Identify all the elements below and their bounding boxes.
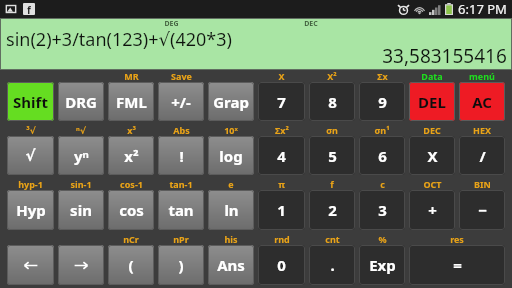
button[interactable]: sin bbox=[58, 190, 104, 230]
button[interactable]: +/- bbox=[158, 82, 204, 121]
staticText: ³√ bbox=[26, 124, 36, 136]
staticText: f bbox=[330, 178, 334, 190]
staticText: . bbox=[330, 255, 335, 275]
button[interactable]: ( bbox=[108, 245, 154, 285]
staticText: ( bbox=[128, 255, 134, 275]
staticText: σn bbox=[326, 124, 338, 136]
staticText: Hyp bbox=[16, 200, 46, 220]
staticText: Σx bbox=[377, 70, 388, 82]
button[interactable]: + bbox=[409, 190, 455, 230]
staticText: tan bbox=[168, 200, 194, 220]
staticText: c bbox=[380, 178, 385, 190]
button[interactable]: x² bbox=[108, 136, 154, 175]
button[interactable]: √ bbox=[7, 136, 54, 175]
button[interactable]: 3 bbox=[359, 190, 405, 230]
staticText: Grap bbox=[213, 92, 249, 112]
staticText: menú bbox=[469, 70, 495, 82]
staticText: nPr bbox=[173, 233, 189, 245]
staticText: x² bbox=[124, 146, 139, 166]
staticText: cnt bbox=[325, 233, 340, 245]
staticText: DEL bbox=[418, 92, 446, 112]
button[interactable]: FML bbox=[108, 82, 154, 121]
staticText: BIN bbox=[474, 178, 491, 190]
staticText: 1 bbox=[277, 200, 286, 220]
staticText: + bbox=[428, 200, 437, 220]
button[interactable]: / bbox=[459, 136, 505, 175]
staticText: Save bbox=[171, 70, 192, 82]
staticText: tan-1 bbox=[169, 178, 193, 190]
staticText: e bbox=[228, 178, 234, 190]
staticText: DEC bbox=[423, 124, 441, 136]
button[interactable]: tan bbox=[158, 190, 204, 230]
button[interactable]: 5 bbox=[309, 136, 355, 175]
button[interactable]: 6 bbox=[359, 136, 405, 175]
staticText: π bbox=[278, 178, 285, 190]
staticText: log bbox=[219, 146, 243, 166]
button[interactable]: Ans bbox=[208, 245, 254, 285]
staticText: DRG bbox=[65, 92, 97, 112]
staticText: 6 bbox=[378, 146, 387, 166]
button[interactable]: Exp bbox=[359, 245, 405, 285]
staticText: rnd bbox=[274, 233, 290, 245]
button[interactable]: X bbox=[409, 136, 455, 175]
staticText: 8 bbox=[328, 92, 337, 112]
button[interactable]: 7 bbox=[258, 82, 305, 121]
staticText: − bbox=[478, 200, 487, 220]
staticText: f bbox=[27, 3, 31, 15]
staticText: Ans bbox=[217, 255, 245, 275]
button[interactable]: 1 bbox=[258, 190, 305, 230]
staticText: hyp-1 bbox=[18, 178, 43, 190]
staticText: DEG bbox=[164, 19, 179, 29]
staticText: Data bbox=[421, 70, 443, 82]
staticText: sin(2)+3/tan(123)+√(420*3) bbox=[6, 27, 232, 52]
staticText: 5 bbox=[328, 146, 337, 166]
button[interactable]: Hyp bbox=[7, 190, 54, 230]
staticText: OCT bbox=[423, 178, 442, 190]
button[interactable]: Move right bbox=[58, 245, 104, 285]
button[interactable]: cos bbox=[108, 190, 154, 230]
staticText: cos bbox=[119, 200, 144, 220]
button[interactable]: ) bbox=[158, 245, 204, 285]
button[interactable]: 2 bbox=[309, 190, 355, 230]
staticText: his bbox=[224, 233, 238, 245]
staticText: ⁿ√ bbox=[76, 124, 86, 136]
staticText: σn¹ bbox=[374, 124, 390, 136]
button[interactable]: 4 bbox=[258, 136, 305, 175]
staticText: 4 bbox=[277, 146, 286, 166]
staticText: cos-1 bbox=[120, 178, 143, 190]
button[interactable]: Move left bbox=[7, 245, 54, 285]
staticText: Abs bbox=[173, 124, 190, 136]
staticText: ) bbox=[178, 255, 184, 275]
button[interactable]: . bbox=[309, 245, 355, 285]
staticText: yⁿ bbox=[74, 146, 89, 166]
staticText: +/- bbox=[171, 92, 191, 112]
button[interactable]: 8 bbox=[309, 82, 355, 121]
button[interactable]: = bbox=[409, 245, 505, 285]
button[interactable]: DRG bbox=[58, 82, 104, 121]
staticText: ln bbox=[224, 200, 239, 220]
button[interactable]: ! bbox=[158, 136, 204, 175]
button[interactable]: yⁿ bbox=[58, 136, 104, 175]
button[interactable]: DEL bbox=[409, 82, 455, 121]
staticText: 0 bbox=[277, 255, 286, 275]
staticText: res bbox=[450, 233, 464, 245]
button[interactable]: 0 bbox=[258, 245, 305, 285]
staticText: % bbox=[378, 233, 387, 245]
button[interactable]: ln bbox=[208, 190, 254, 230]
staticText: X bbox=[278, 70, 285, 82]
button[interactable]: Shift bbox=[7, 82, 54, 121]
button[interactable]: AC bbox=[459, 82, 505, 121]
button[interactable]: 9 bbox=[359, 82, 405, 121]
button[interactable]: Grap bbox=[208, 82, 254, 121]
button[interactable]: − bbox=[459, 190, 505, 230]
staticText: sin bbox=[70, 200, 92, 220]
staticText: FML bbox=[116, 92, 147, 112]
staticText: √ bbox=[25, 147, 36, 164]
staticText: Shift bbox=[13, 92, 48, 112]
staticText: X² bbox=[327, 70, 337, 82]
button[interactable]: log bbox=[208, 136, 254, 175]
staticText: / bbox=[479, 146, 486, 166]
staticText: nCr bbox=[123, 233, 139, 245]
staticText: Σx² bbox=[275, 124, 289, 136]
staticText: AC bbox=[472, 92, 492, 112]
